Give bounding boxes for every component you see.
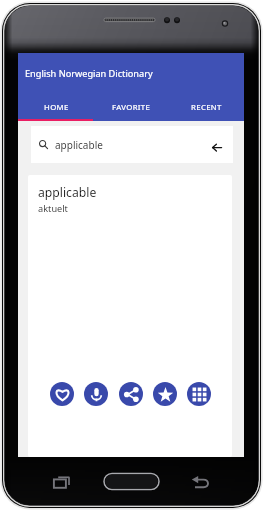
staticText: applicable [38, 184, 97, 201]
staticText: RECENT [191, 102, 222, 113]
button[interactable]: RECENT [169, 94, 244, 121]
staticText: aktuelt [38, 202, 68, 215]
button[interactable]: More apps [187, 382, 211, 406]
button[interactable]: Back [209, 139, 225, 155]
staticText: applicable [55, 138, 103, 152]
button[interactable]: Voice search [84, 382, 108, 406]
staticText: HOME [44, 102, 69, 113]
button[interactable]: FAVORITE [94, 94, 169, 121]
staticText: FAVORITE [112, 102, 151, 113]
button[interactable]: HOME [18, 94, 94, 121]
button[interactable]: Star [153, 382, 177, 406]
button[interactable]: Favorite [50, 382, 74, 406]
button[interactable]: Share [119, 382, 143, 406]
staticText: English Norwegian Dictionary [25, 67, 153, 80]
